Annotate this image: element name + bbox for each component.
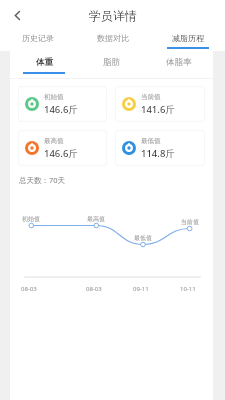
staticText: 减脂历程 bbox=[172, 33, 204, 43]
button[interactable]: 减脂历程 bbox=[150, 30, 225, 51]
button[interactable]: Back bbox=[6, 4, 28, 26]
staticText: 141.6斤 bbox=[141, 103, 175, 116]
staticText: 当前值 bbox=[141, 93, 161, 101]
staticText: 146.6斤 bbox=[44, 103, 78, 116]
staticText: 脂肪 bbox=[103, 57, 120, 68]
staticText: 最高值 bbox=[87, 215, 105, 223]
button[interactable]: 当前值 bbox=[115, 86, 205, 122]
staticText: 10-11 bbox=[180, 285, 196, 293]
staticText: 历史记录 bbox=[22, 33, 54, 43]
button[interactable]: 数据对比 bbox=[75, 30, 150, 51]
staticText: 09-11 bbox=[133, 285, 149, 293]
button[interactable]: 最低值 bbox=[115, 130, 205, 166]
staticText: 最高值 bbox=[44, 137, 64, 145]
staticText: 体重 bbox=[36, 57, 53, 68]
staticText: 最低值 bbox=[141, 137, 161, 145]
staticText: 数据对比 bbox=[97, 33, 129, 43]
staticText: 08-03 bbox=[86, 285, 102, 293]
staticText: 146.6斤 bbox=[44, 147, 78, 160]
button[interactable]: 最高值 bbox=[18, 130, 107, 166]
button[interactable]: 初始值 bbox=[18, 86, 107, 122]
staticText: 114.8斤 bbox=[141, 147, 175, 160]
staticText: 体脂率 bbox=[166, 57, 192, 68]
staticText: 总天数：70天 bbox=[19, 175, 66, 185]
staticText: 学员详情 bbox=[89, 8, 137, 23]
button[interactable]: 历史记录 bbox=[0, 30, 75, 51]
staticText: 初始值 bbox=[44, 93, 64, 101]
button[interactable]: 体脂率 bbox=[145, 51, 213, 79]
button[interactable]: 脂肪 bbox=[77, 51, 145, 79]
staticText: 当前值 bbox=[181, 218, 199, 226]
staticText: 最低值 bbox=[134, 234, 152, 242]
staticText: 08-03 bbox=[21, 285, 37, 293]
staticText: 初始值 bbox=[22, 215, 40, 223]
button[interactable]: 体重 bbox=[10, 51, 77, 79]
